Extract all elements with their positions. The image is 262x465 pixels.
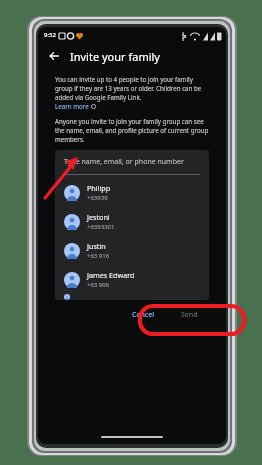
staticText: +63 916 xyxy=(87,252,110,260)
staticText: Philipp xyxy=(87,183,111,193)
staticText: Justin xyxy=(87,241,106,251)
staticText: +63 906 xyxy=(87,281,110,289)
staticText: +6393301 xyxy=(87,223,115,231)
staticText: James Edward xyxy=(87,270,135,280)
staticText: You can invite up to 4 people to join yo… xyxy=(55,75,209,102)
button[interactable]: Justin xyxy=(55,236,209,265)
button[interactable]: Cancel xyxy=(126,307,161,323)
button[interactable]: Type name, email, or phone number xyxy=(55,150,209,174)
staticText: Send xyxy=(181,310,198,320)
staticText: Jestoni xyxy=(87,212,110,222)
staticText: +63939 xyxy=(87,194,108,202)
button[interactable]: Back xyxy=(45,47,63,65)
staticText: 9:52 xyxy=(44,31,56,39)
button[interactable] xyxy=(55,294,209,300)
button[interactable]: James Edward xyxy=(55,265,209,294)
button[interactable]: Jestoni xyxy=(55,207,209,236)
staticText: Invite your family xyxy=(70,49,160,64)
button[interactable]: Philipp xyxy=(55,178,209,207)
button[interactable]: Send xyxy=(175,307,204,323)
staticText: Type name, email, or phone number xyxy=(64,157,184,167)
staticText: Anyone you invite to join your family gr… xyxy=(55,117,209,144)
button[interactable]: Learn more xyxy=(55,102,89,110)
staticText: Cancel xyxy=(132,310,155,320)
